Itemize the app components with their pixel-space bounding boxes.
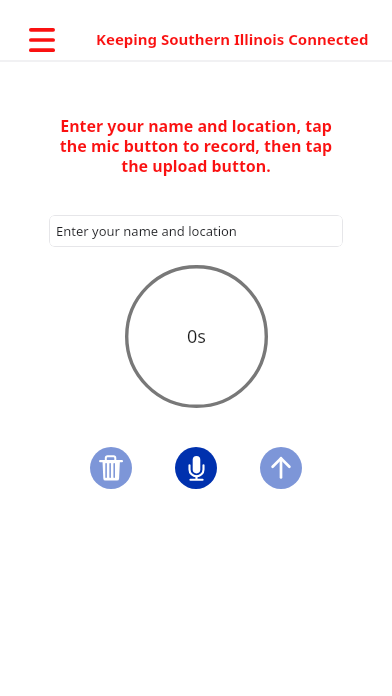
button[interactable]: Enter your name and location <box>49 215 343 247</box>
staticText: Enter your name and location <box>56 222 237 240</box>
button[interactable]: Menu <box>21 19 63 60</box>
staticText: Enter your name and location, tap the mi… <box>46 115 346 176</box>
button[interactable]: Upload <box>260 447 302 489</box>
staticText: 0s <box>187 324 206 349</box>
staticText: Keeping Southern Illinois Connected <box>96 29 369 49</box>
button[interactable]: Record <box>175 447 217 489</box>
button[interactable]: Delete recording <box>90 447 132 489</box>
